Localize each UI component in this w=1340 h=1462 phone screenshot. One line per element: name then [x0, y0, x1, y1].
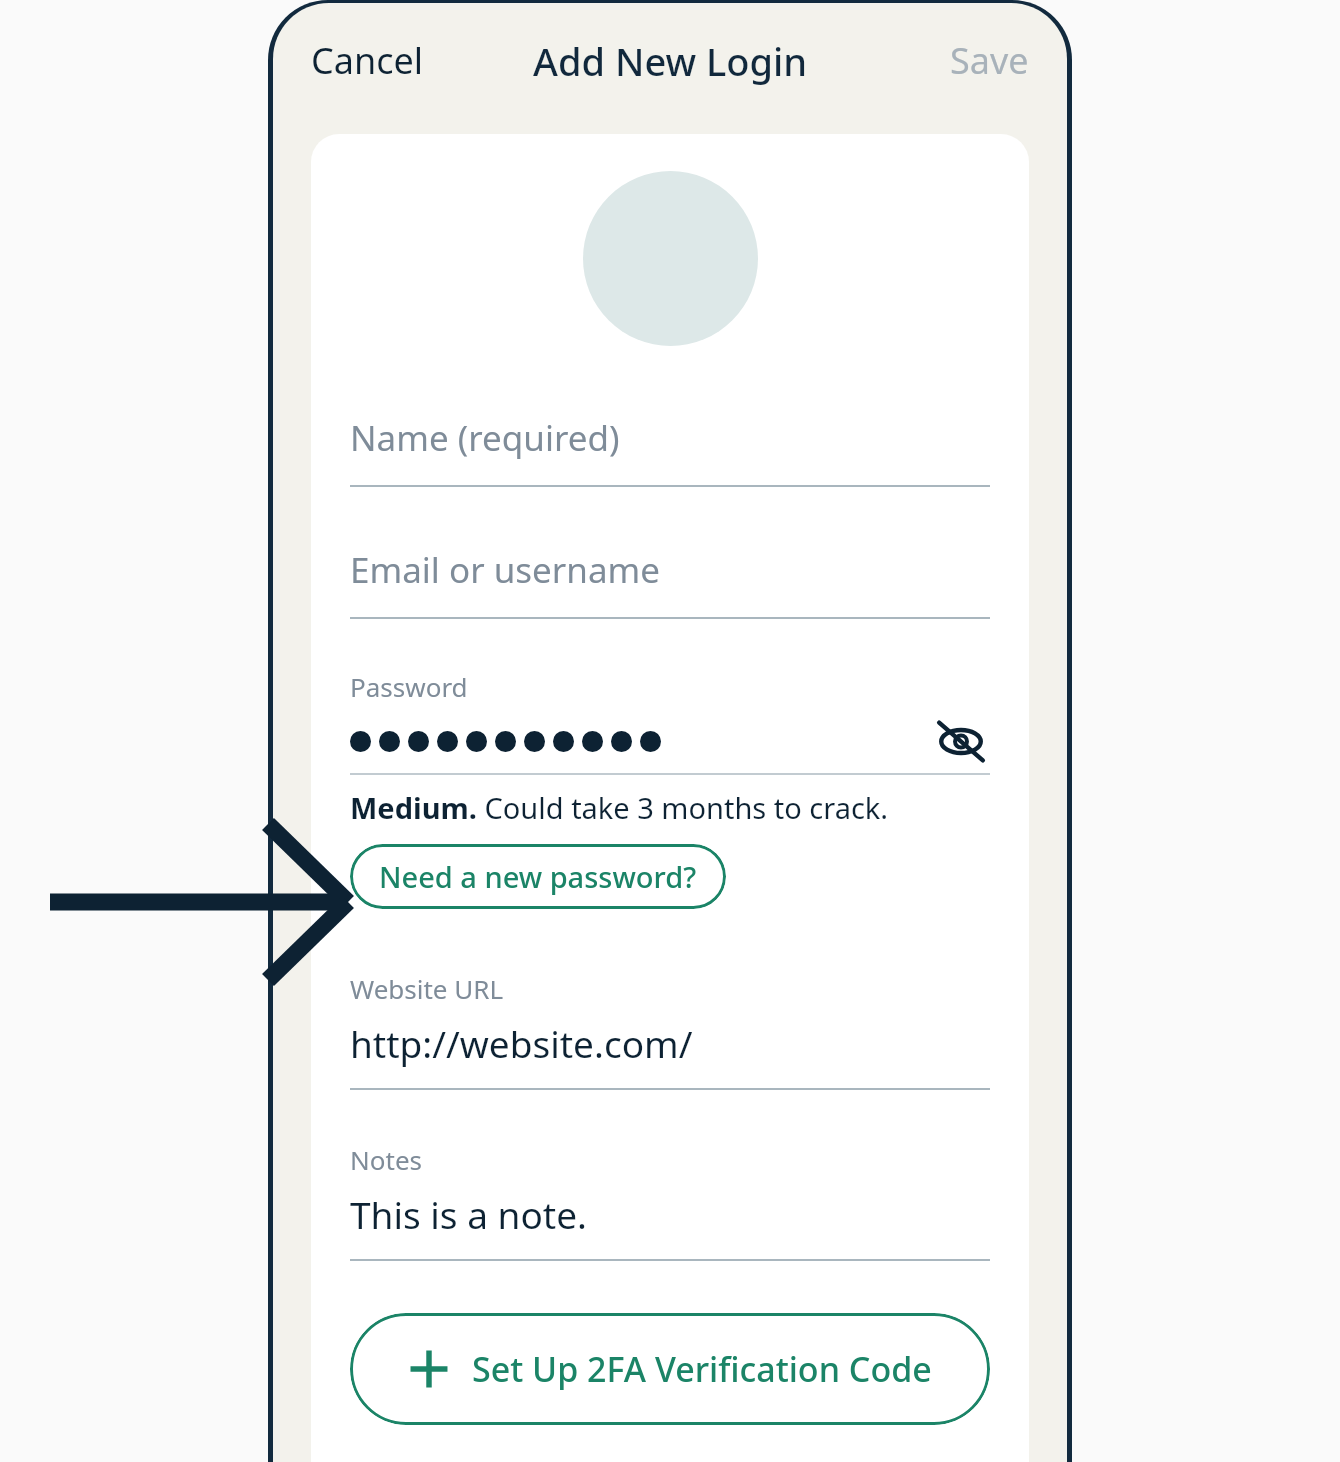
button[interactable]: Cancel	[273, 26, 462, 95]
staticText: http://website.com/	[350, 1018, 693, 1068]
button[interactable]: Set Up 2FA Verification Code	[350, 1313, 990, 1425]
staticText: Need a new password?	[379, 857, 697, 896]
staticText: Password	[350, 669, 468, 704]
staticText: Set Up 2FA Verification Code	[472, 1346, 932, 1392]
button[interactable]: Show password	[932, 718, 990, 765]
staticText: Name (required)	[350, 414, 620, 462]
button[interactable]: Name (required)	[350, 414, 990, 487]
staticText: Email or username	[350, 546, 661, 594]
staticText: Medium. Could take 3 months to crack.	[350, 788, 889, 827]
button[interactable]: Notes	[350, 1142, 990, 1261]
button[interactable]: Need a new password?	[350, 844, 726, 909]
button[interactable]: Save	[912, 26, 1067, 95]
button[interactable]: Website URL	[350, 971, 990, 1090]
button[interactable]: Add icon	[583, 171, 758, 346]
staticText: Cancel	[311, 36, 424, 85]
staticText: Add New Login	[533, 35, 808, 87]
staticText: Website URL	[350, 971, 504, 1006]
staticText: Notes	[350, 1142, 422, 1177]
staticText: Save	[950, 36, 1029, 85]
staticText: This is a note.	[350, 1189, 587, 1239]
button[interactable]: Email or username	[350, 546, 990, 619]
